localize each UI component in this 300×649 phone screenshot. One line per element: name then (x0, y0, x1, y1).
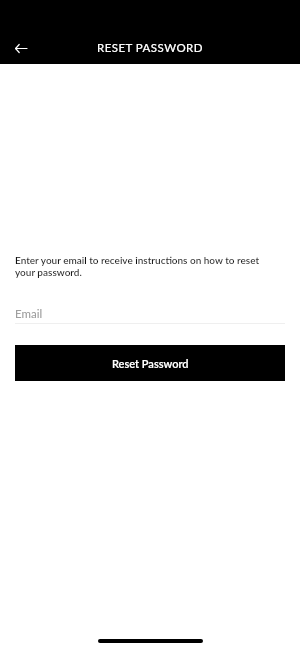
staticText: Reset Password (112, 357, 189, 370)
button[interactable]: Navigate back (3, 30, 39, 66)
staticText: RESET PASSWORD (97, 41, 203, 55)
staticText: Email (15, 307, 43, 321)
staticText: Enter your email to receive instructions… (15, 254, 260, 278)
button[interactable]: Reset Password (15, 345, 285, 381)
button[interactable]: Email input field (15, 305, 285, 324)
